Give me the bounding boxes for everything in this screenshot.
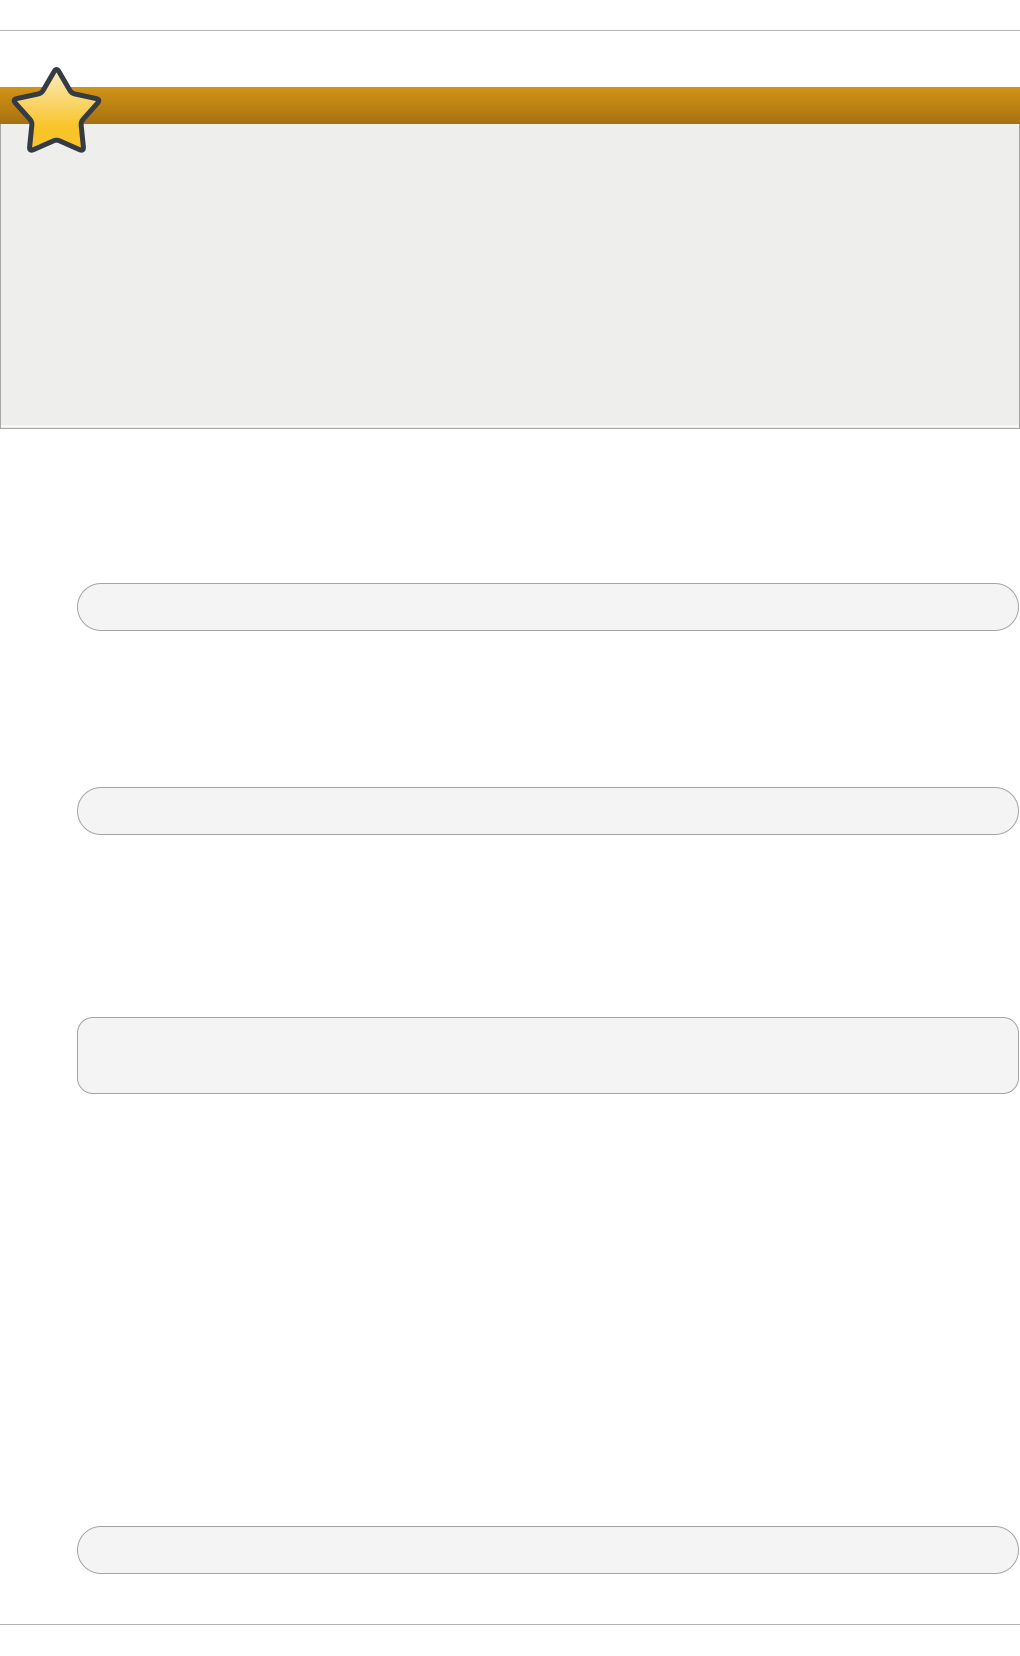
button[interactable]: Item 1 — [77, 583, 1019, 631]
button[interactable]: Item 2 — [77, 787, 1019, 835]
button[interactable]: Item 4 — [77, 1526, 1019, 1574]
button[interactable]: Item 3 — [77, 1017, 1019, 1094]
button[interactable]: Favorite — [10, 63, 103, 156]
